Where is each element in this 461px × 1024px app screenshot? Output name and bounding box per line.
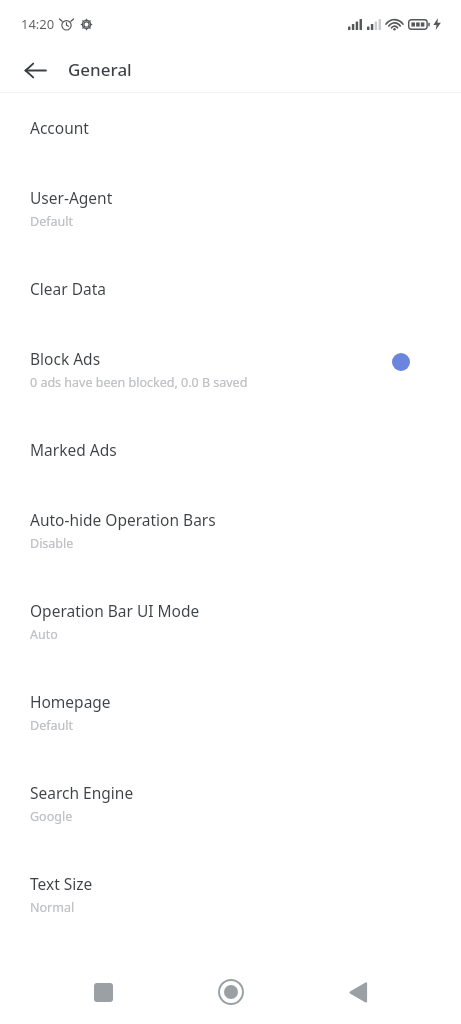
staticText: Search Engine: [30, 782, 134, 803]
staticText: Auto: [30, 626, 58, 643]
staticText: Disable: [30, 535, 74, 552]
button[interactable]: Search Engine: [0, 774, 461, 865]
button[interactable]: Text Size: [0, 865, 461, 956]
staticText: Google: [30, 808, 73, 825]
staticText: Operation Bar UI Mode: [30, 600, 200, 621]
button[interactable]: Home: [206, 967, 256, 1017]
staticText: Default: [30, 717, 73, 734]
button[interactable]: Clear Data: [0, 270, 461, 340]
staticText: General: [68, 58, 132, 81]
button[interactable]: Block Ads toggle: [392, 353, 410, 371]
button[interactable]: User-Agent: [0, 179, 461, 270]
staticText: 14:20: [21, 15, 55, 33]
button[interactable]: Operation Bar UI Mode: [0, 592, 461, 683]
button[interactable]: Back: [14, 49, 56, 91]
staticText: Auto-hide Operation Bars: [30, 509, 216, 530]
button[interactable]: Auto-hide Operation Bars: [0, 501, 461, 592]
staticText: Clear Data: [30, 278, 106, 299]
button[interactable]: Recent apps: [78, 967, 128, 1017]
staticText: Homepage: [30, 691, 111, 712]
staticText: Default: [30, 213, 73, 230]
button[interactable]: Homepage: [0, 683, 461, 774]
staticText: User-Agent: [30, 187, 113, 208]
staticText: Text Size: [30, 873, 93, 894]
button[interactable]: Block Ads: [0, 340, 461, 431]
staticText: Marked Ads: [30, 439, 117, 460]
staticText: Normal: [30, 899, 75, 916]
button[interactable]: Account: [0, 109, 461, 179]
button[interactable]: Back: [333, 967, 383, 1017]
staticText: Account: [30, 117, 89, 138]
staticText: 0 ads have been blocked, 0.0 B saved: [30, 374, 248, 391]
button[interactable]: Marked Ads: [0, 431, 461, 501]
staticText: Block Ads: [30, 348, 101, 369]
